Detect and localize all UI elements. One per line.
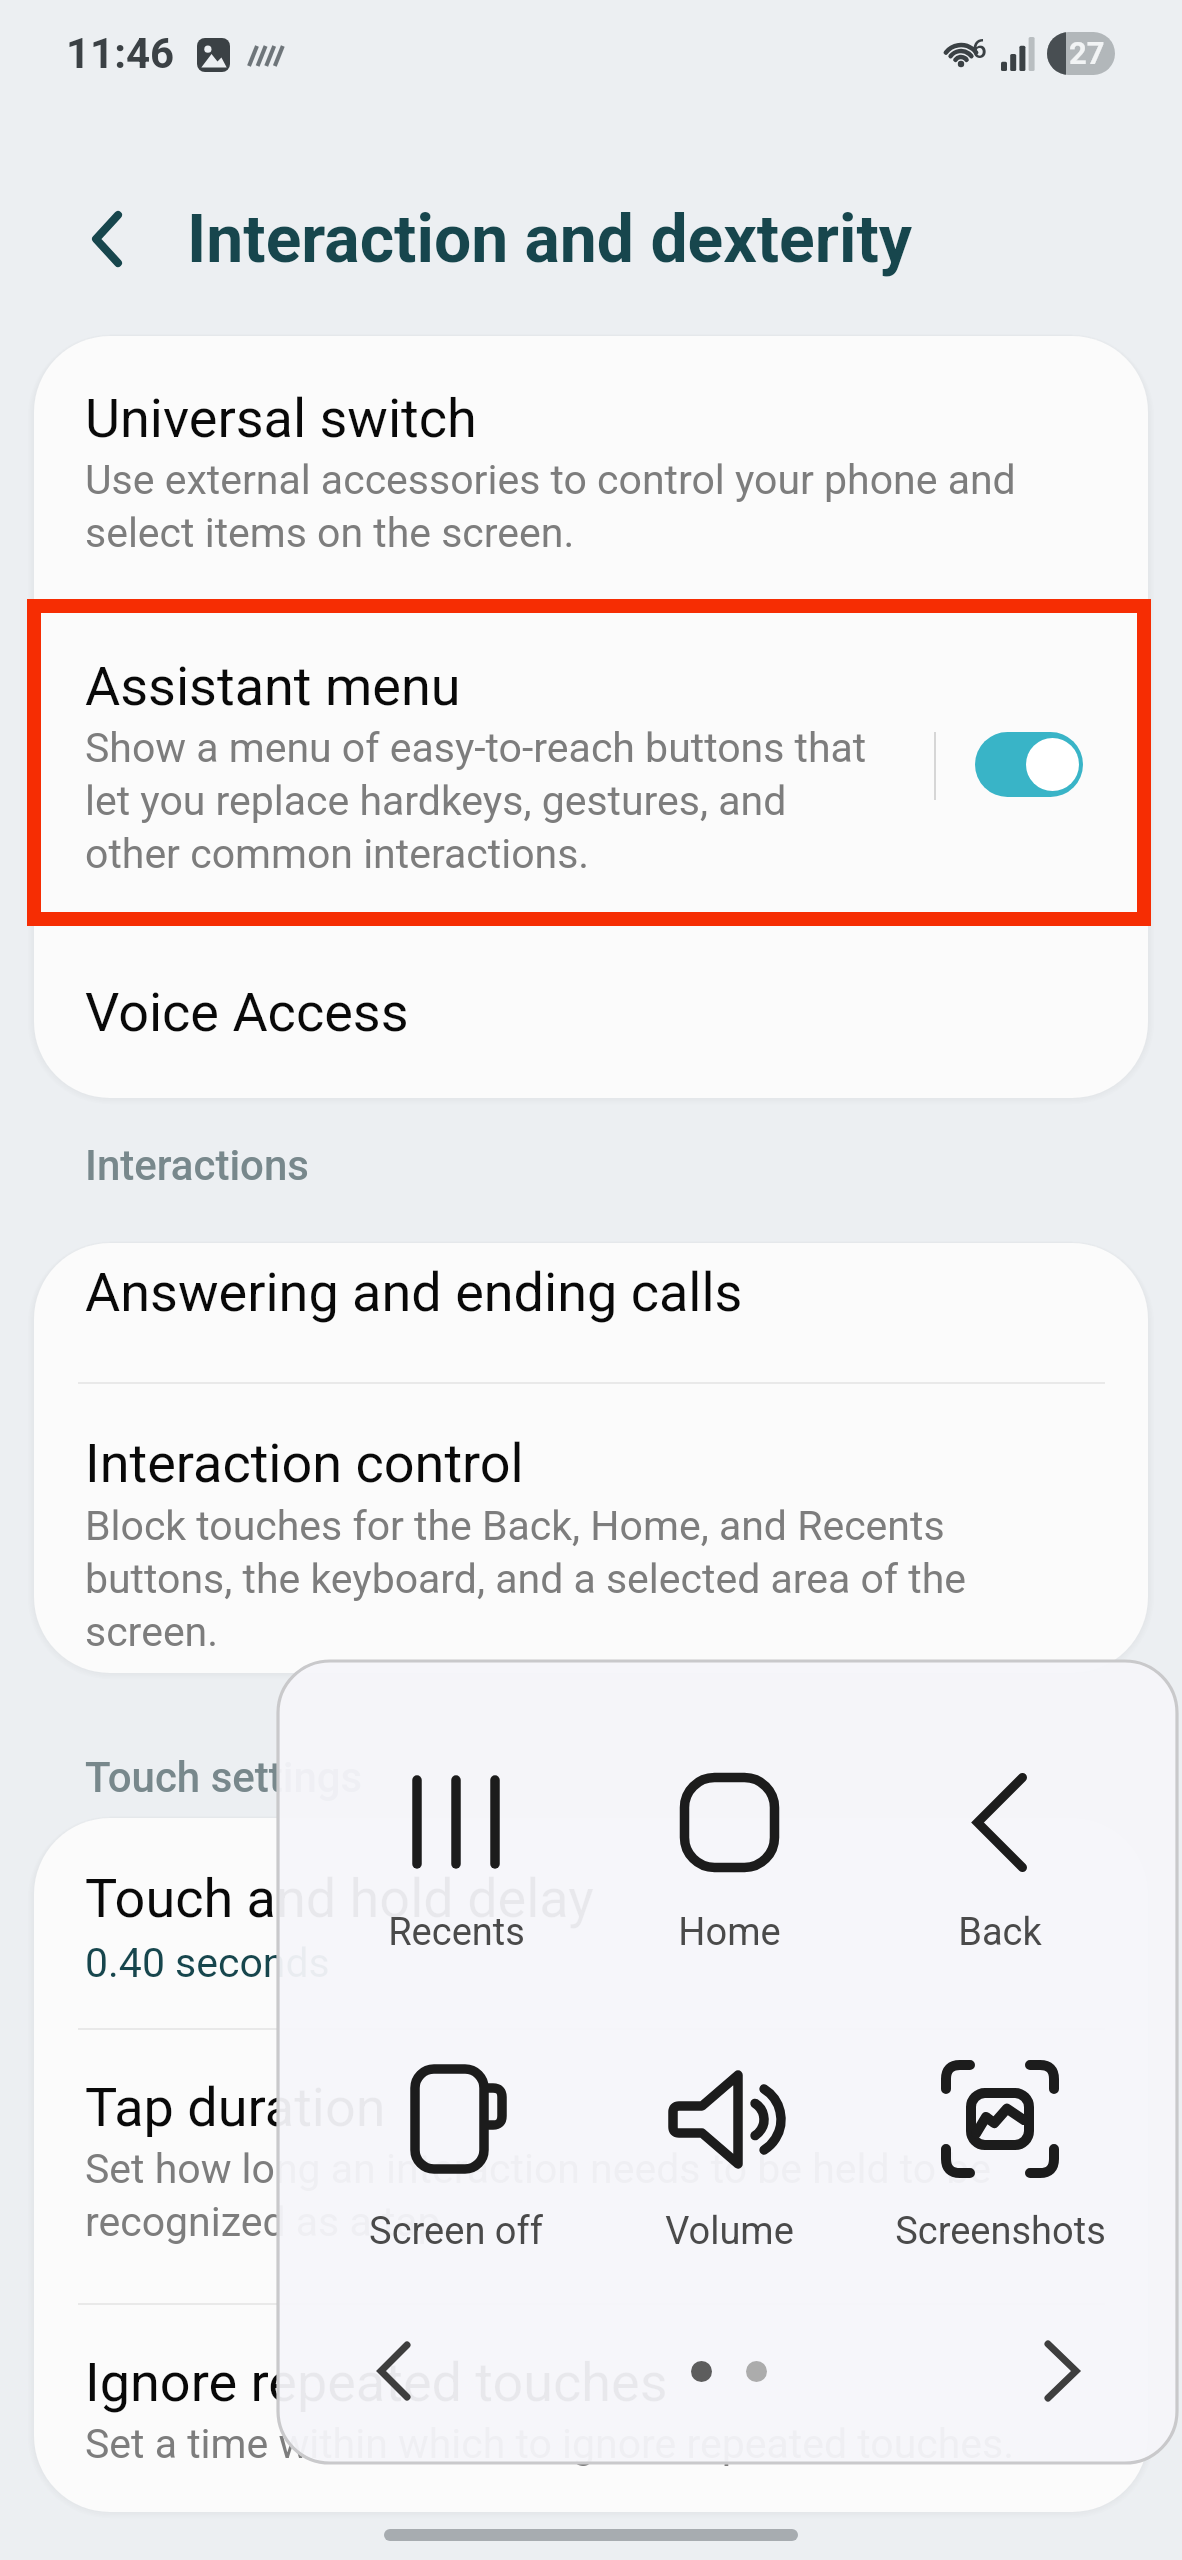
button[interactable]: Back bbox=[63, 195, 151, 283]
staticText: Set a time within which to ignore repeat… bbox=[85, 2420, 1085, 2468]
button[interactable] bbox=[34, 1818, 1148, 2028]
staticText: Use external accessories to control your… bbox=[85, 456, 1085, 557]
staticText: Interactions bbox=[85, 1141, 309, 1190]
staticText: Recents bbox=[388, 1910, 525, 1955]
staticText: Screenshots bbox=[895, 2209, 1106, 2254]
staticText: Touch and hold delay bbox=[85, 1867, 594, 1930]
button[interactable] bbox=[870, 1746, 1130, 1972]
button[interactable] bbox=[34, 600, 1148, 926]
button[interactable] bbox=[34, 1384, 1148, 1673]
button[interactable] bbox=[326, 1746, 586, 1972]
staticText: Show a menu of easy-to-reach buttons tha… bbox=[85, 724, 1085, 878]
staticText: Touch settings bbox=[85, 1753, 363, 1802]
staticText: Set how long an interaction needs to be … bbox=[85, 2145, 1085, 2246]
staticText: Universal switch bbox=[85, 387, 477, 450]
staticText: 11:46 bbox=[66, 29, 175, 78]
staticText: Voice Access bbox=[85, 981, 409, 1044]
staticText: Screen off bbox=[369, 2209, 543, 2254]
staticText: Home bbox=[678, 1910, 781, 1955]
staticText: Back bbox=[958, 1910, 1042, 1955]
staticText: Ignore repeated touches bbox=[85, 2351, 668, 2414]
button[interactable] bbox=[34, 336, 1148, 600]
button[interactable]: Next page bbox=[1018, 2327, 1106, 2415]
staticText: 0.40 seconds bbox=[85, 1939, 1085, 1987]
staticText: Assistant menu bbox=[85, 655, 461, 718]
button[interactable] bbox=[870, 2043, 1130, 2269]
button[interactable] bbox=[34, 2305, 1148, 2512]
button[interactable]: Previous page bbox=[350, 2327, 438, 2415]
button[interactable] bbox=[34, 926, 1148, 1098]
staticText: Interaction control bbox=[85, 1432, 524, 1495]
button[interactable] bbox=[599, 1746, 859, 1972]
staticText: 6 bbox=[972, 34, 987, 64]
button[interactable] bbox=[34, 2030, 1148, 2303]
staticText: Answering and ending calls bbox=[85, 1261, 743, 1324]
button[interactable]: Assistant menu on bbox=[975, 732, 1083, 797]
button[interactable] bbox=[326, 2043, 586, 2269]
staticText: 27 bbox=[1069, 35, 1105, 71]
staticText: Block touches for the Back, Home, and Re… bbox=[85, 1502, 1085, 1656]
staticText: Tap duration bbox=[85, 2076, 386, 2139]
staticText: Volume bbox=[665, 2209, 794, 2254]
button[interactable] bbox=[34, 1243, 1148, 1382]
staticText: Interaction and dexterity bbox=[187, 201, 912, 278]
button[interactable] bbox=[599, 2043, 859, 2269]
